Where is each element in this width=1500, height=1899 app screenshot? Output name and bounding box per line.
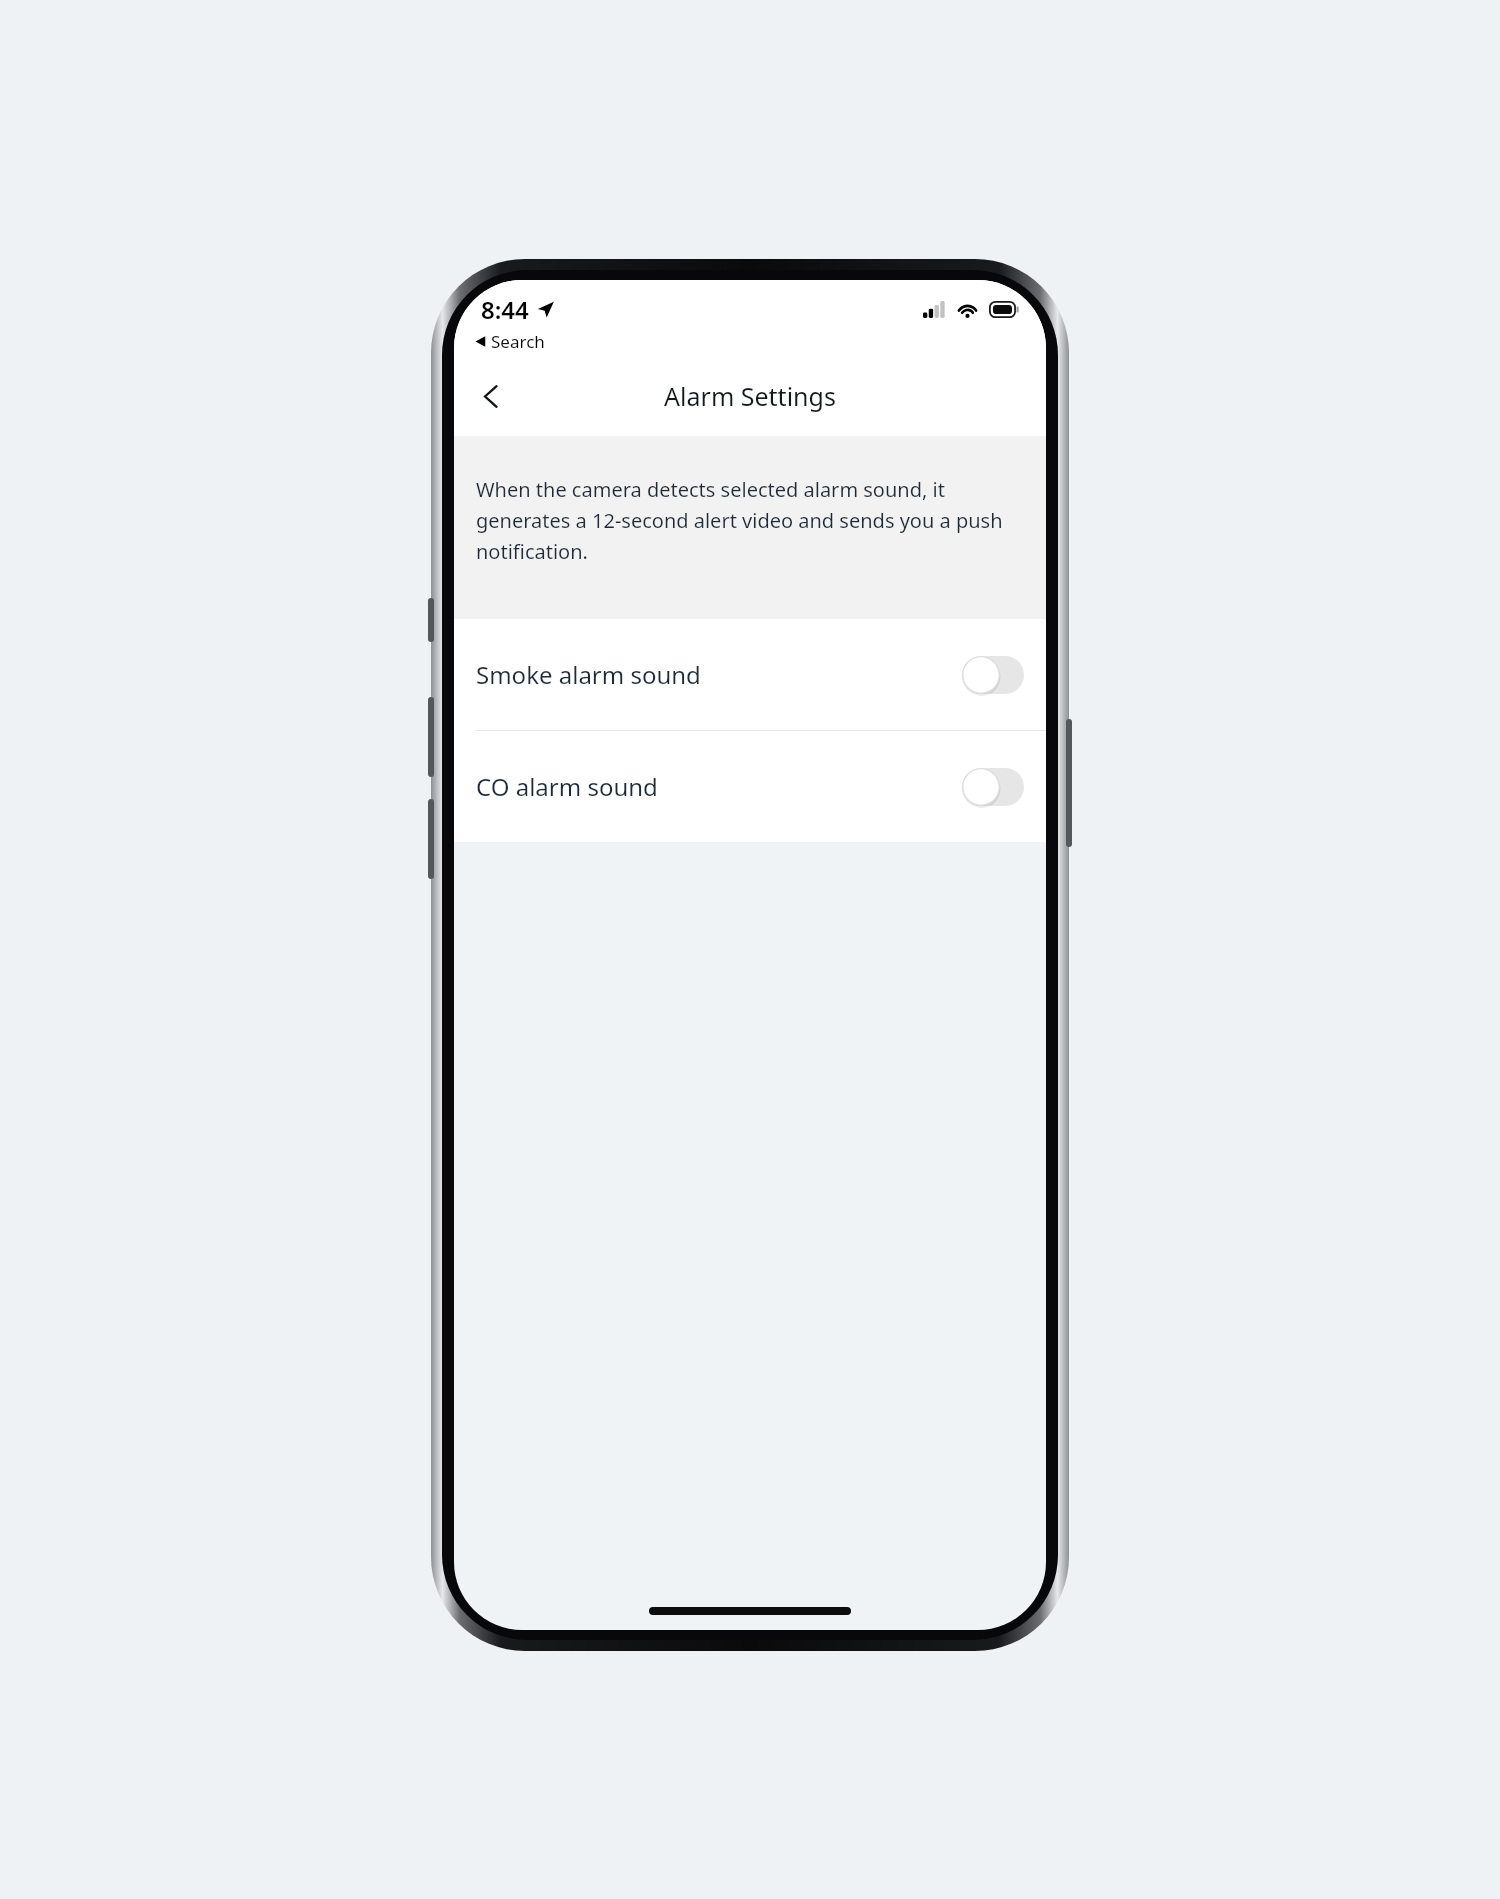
staticText: Alarm Settings: [664, 379, 836, 413]
staticText: Smoke alarm sound: [476, 658, 701, 691]
button[interactable]: CO alarm sound: [454, 731, 1046, 842]
button[interactable]: Smoke alarm sound: [454, 619, 1046, 730]
staticText: When the camera detects selected alarm s…: [476, 476, 1014, 565]
staticText: 8:44: [481, 293, 529, 326]
staticText: CO alarm sound: [476, 770, 658, 803]
button[interactable]: Toggle CO alarm sound: [962, 768, 1024, 806]
button[interactable]: Toggle Smoke alarm sound: [962, 656, 1024, 694]
button[interactable]: Back: [464, 369, 518, 423]
staticText: Search: [491, 330, 545, 353]
button[interactable]: Search: [475, 330, 545, 353]
